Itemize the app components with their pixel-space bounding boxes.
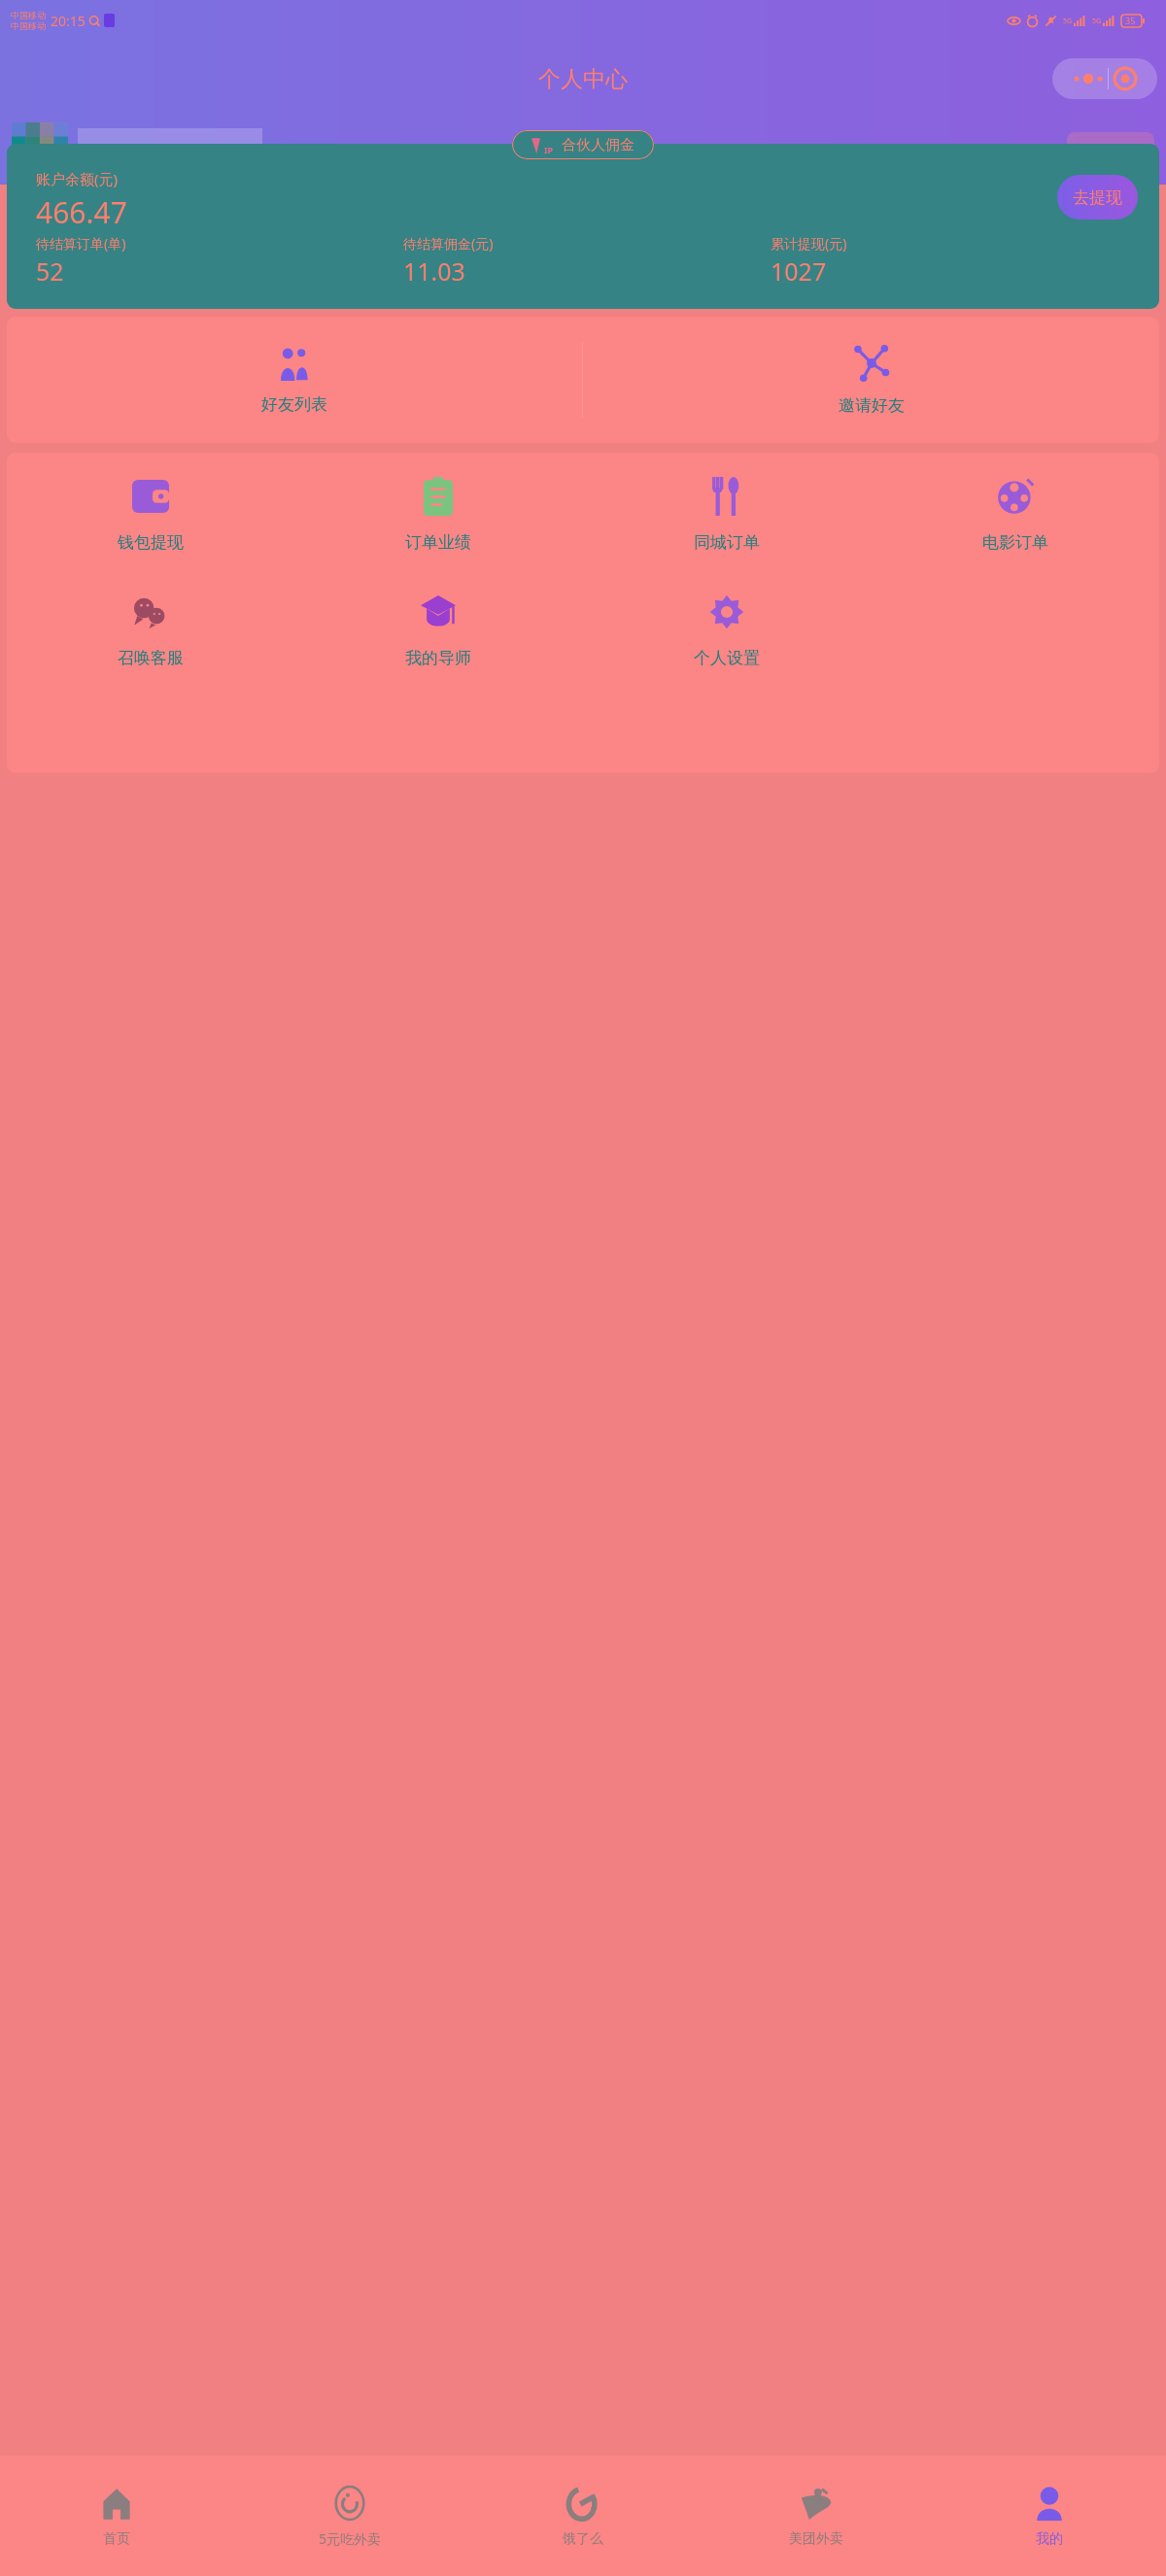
staticText: 累计提现(元) bbox=[771, 234, 847, 253]
staticText: 个人设置 bbox=[694, 648, 760, 668]
staticText: 11.03 bbox=[403, 254, 465, 288]
button[interactable]: 个人设置 bbox=[582, 590, 871, 668]
button[interactable]: 5元吃外卖 bbox=[233, 2456, 466, 2576]
staticText: 20:15 bbox=[51, 12, 86, 30]
button[interactable]: 电影订单 bbox=[871, 474, 1159, 553]
staticText: 召唤客服 bbox=[118, 648, 184, 668]
button[interactable]: 美团外卖 bbox=[700, 2456, 933, 2576]
staticText: 我的导师 bbox=[405, 648, 471, 668]
staticText: 个人中心 bbox=[538, 65, 628, 93]
staticText: 5G bbox=[1063, 17, 1073, 26]
button[interactable]: 首页 bbox=[0, 2456, 233, 2576]
button[interactable]: 同城订单 bbox=[582, 474, 871, 553]
button[interactable]: 召唤客服 bbox=[7, 590, 294, 668]
staticText: 电影订单 bbox=[982, 532, 1048, 553]
button[interactable]: 我的导师 bbox=[294, 590, 582, 668]
staticText: 35 bbox=[1125, 15, 1136, 26]
staticText: 466.47 bbox=[36, 192, 127, 232]
button[interactable]: 订单业绩 bbox=[294, 474, 582, 553]
staticText: 首页 bbox=[103, 2530, 130, 2548]
button[interactable]: 我的 bbox=[933, 2456, 1166, 2576]
staticText: 待结算订单(单) bbox=[36, 234, 126, 253]
staticText: 订单业绩 bbox=[405, 532, 471, 553]
staticText: 美团外卖 bbox=[789, 2530, 843, 2548]
button[interactable]: 饿了么 bbox=[466, 2456, 700, 2576]
staticText: 钱包提现 bbox=[118, 532, 184, 553]
staticText: 我的 bbox=[1036, 2530, 1063, 2548]
button[interactable]: 去提现 bbox=[1057, 175, 1138, 220]
staticText: 中国移动 bbox=[11, 20, 46, 31]
button[interactable]: 复制ID bbox=[1067, 132, 1154, 169]
staticText: 合伙人佣金 bbox=[562, 136, 634, 154]
button[interactable]: 钱包提现 bbox=[7, 474, 294, 553]
staticText: 去提现 bbox=[1073, 187, 1122, 208]
staticText: 邀请好友 bbox=[839, 395, 905, 416]
button[interactable]: 好友列表 bbox=[7, 317, 582, 443]
button[interactable]: IP bbox=[512, 130, 654, 159]
staticText: 中国移动 bbox=[11, 10, 46, 20]
staticText: 饿了么 bbox=[563, 2530, 603, 2548]
button[interactable]: More options bbox=[1052, 58, 1157, 99]
button[interactable]: 邀请好友 bbox=[583, 317, 1159, 443]
staticText: 账户余额(元) bbox=[36, 169, 119, 188]
staticText: 好友列表 bbox=[261, 394, 327, 415]
staticText: 5G bbox=[1092, 17, 1102, 26]
staticText: 复制ID bbox=[1090, 142, 1132, 160]
staticText: 5元吃外卖 bbox=[319, 2529, 382, 2548]
staticText: 1027 bbox=[771, 254, 827, 288]
staticText: 同城订单 bbox=[694, 532, 760, 553]
staticText: IP bbox=[544, 144, 554, 155]
staticText: 待结算佣金(元) bbox=[403, 234, 494, 253]
staticText: 52 bbox=[36, 254, 64, 288]
